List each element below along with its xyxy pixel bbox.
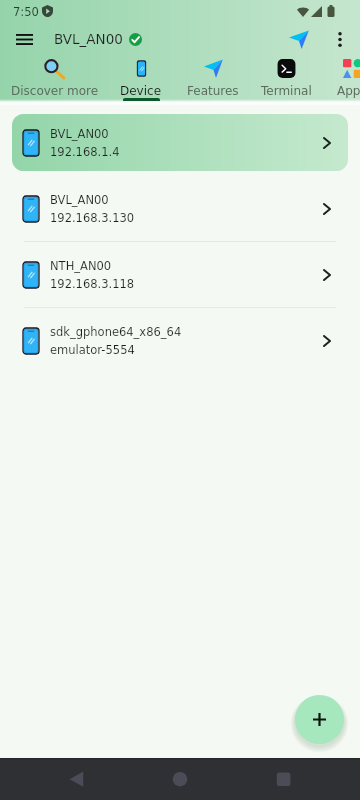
button[interactable]: Features [168, 53, 258, 106]
staticText: Device [120, 84, 162, 98]
button[interactable]: sdk_gphone64_x86_64 [0, 307, 360, 373]
button[interactable]: Terminal [241, 53, 331, 106]
staticText: emulator-5554 [50, 343, 135, 356]
staticText: BVL_AN00 [50, 193, 109, 206]
staticText: Apps [337, 84, 360, 98]
button[interactable]: Menu [8, 23, 40, 55]
staticText: 192.168.3.118 [50, 277, 135, 290]
button[interactable]: More options [325, 24, 355, 54]
button[interactable]: BVL_AN00 [0, 175, 360, 241]
button[interactable]: NTH_AN00 [0, 241, 360, 307]
button[interactable]: Device [96, 53, 186, 106]
staticText: Discover more [11, 84, 99, 98]
staticText: Features [187, 84, 239, 98]
staticText: 192.168.1.4 [50, 145, 120, 158]
button[interactable]: Add device [295, 695, 344, 744]
staticText: NTH_AN00 [50, 259, 112, 272]
staticText: 192.168.3.130 [50, 211, 135, 224]
staticText: BVL_AN00 [50, 127, 109, 140]
button[interactable]: Apps [307, 53, 360, 106]
button[interactable]: Discover more [10, 53, 100, 106]
staticText: Terminal [261, 84, 312, 98]
staticText: sdk_gphone64_x86_64 [50, 325, 182, 338]
button[interactable]: BVL_AN00 [12, 114, 348, 171]
staticText: 7:50 [13, 5, 39, 18]
staticText: BVL_AN00 [54, 31, 123, 47]
button[interactable]: Send [284, 24, 314, 54]
